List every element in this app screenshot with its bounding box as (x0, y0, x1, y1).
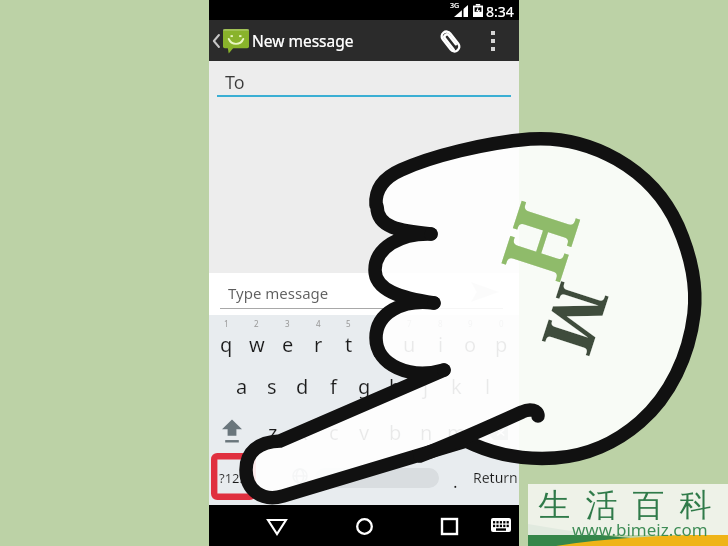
staticText: h (389, 373, 402, 400)
staticText: s (267, 373, 277, 400)
button[interactable]: v (349, 409, 380, 455)
staticText: v (359, 419, 370, 446)
button[interactable]: h (380, 363, 411, 409)
staticText: M (522, 273, 633, 366)
staticText: t (345, 331, 353, 358)
button[interactable]: Back (211, 20, 253, 61)
button[interactable]: . (445, 466, 465, 496)
staticText: www.bimeiz.com (572, 518, 708, 541)
staticText: k (451, 373, 462, 400)
button[interactable]: Backspace (476, 409, 518, 455)
staticText: 8:34 (486, 2, 514, 21)
button[interactable]: a (226, 363, 257, 409)
staticText: e (282, 331, 294, 358)
staticText: c (329, 419, 339, 446)
staticText: 生活百科 (531, 485, 719, 525)
staticText: H (477, 191, 610, 294)
staticText: j (423, 373, 429, 400)
staticText: New message (252, 30, 354, 51)
staticText: r (314, 331, 323, 358)
staticText: l (485, 373, 491, 400)
button[interactable]: z (257, 409, 288, 455)
staticText: i (438, 331, 444, 358)
button[interactable]: ?123 (212, 456, 254, 500)
staticText: ?123 (219, 469, 247, 487)
button[interactable]: Attach (431, 22, 469, 60)
button[interactable]: b (380, 409, 411, 455)
staticText: b (389, 419, 402, 446)
staticText: 4 (316, 318, 321, 329)
button[interactable]: Recents (436, 513, 462, 539)
button[interactable]: 1 (211, 317, 242, 363)
button[interactable]: d (287, 363, 318, 409)
staticText: q (220, 331, 233, 358)
staticText: m (447, 419, 466, 446)
button[interactable]: j (410, 363, 441, 409)
button[interactable]: Return (470, 458, 520, 496)
button[interactable]: To (209, 61, 519, 100)
button[interactable]: 3 (272, 317, 303, 363)
staticText: d (296, 373, 309, 400)
staticText: f (330, 373, 337, 400)
button[interactable]: 4 (303, 317, 334, 363)
staticText: z (268, 419, 278, 446)
button[interactable]: c (318, 409, 349, 455)
staticText: 1 (224, 318, 229, 329)
button[interactable]: m (441, 409, 472, 455)
button[interactable]: 0 (486, 317, 517, 363)
staticText: To (225, 70, 245, 95)
staticText: g (358, 373, 371, 400)
button[interactable]: More options (479, 22, 507, 60)
button[interactable]: f (318, 363, 349, 409)
button[interactable]: Space (315, 468, 439, 488)
button[interactable]: g (349, 363, 380, 409)
button[interactable]: n (411, 409, 442, 455)
staticText: x (297, 419, 308, 446)
staticText: . (453, 470, 458, 493)
button[interactable]: Keyboard (488, 514, 513, 536)
staticText: u (403, 331, 416, 358)
staticText: Return (473, 468, 518, 487)
staticText: w (249, 331, 265, 358)
button[interactable]: 5 (333, 317, 364, 363)
button[interactable]: k (441, 363, 472, 409)
button[interactable]: Home (351, 513, 377, 539)
button[interactable]: 7 (394, 317, 425, 363)
button[interactable]: Language (283, 454, 317, 498)
staticText: 2 (254, 318, 259, 329)
button[interactable]: s (256, 363, 287, 409)
staticText: 3G (450, 1, 460, 11)
staticText: y (374, 331, 385, 358)
staticText: o (464, 331, 477, 358)
button[interactable]: Back (264, 513, 290, 539)
staticText: Type message (228, 283, 329, 303)
staticText: 5 (346, 318, 351, 329)
staticText: 3 (285, 318, 290, 329)
staticText: n (420, 419, 433, 446)
staticText: a (236, 373, 248, 400)
button[interactable]: x (287, 409, 318, 455)
staticText: p (495, 331, 508, 358)
button[interactable]: Shift (210, 409, 254, 455)
button[interactable]: 6 (364, 317, 395, 363)
button[interactable]: 2 (241, 317, 272, 363)
